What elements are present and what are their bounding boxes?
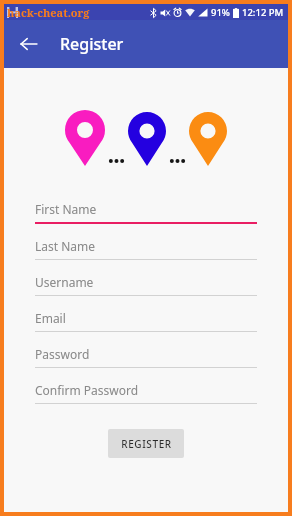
staticText: Last Name (35, 238, 96, 254)
button[interactable]: Confirm Password (35, 377, 257, 413)
staticText: REGISTER (121, 437, 172, 451)
staticText: Email (35, 310, 66, 326)
button[interactable]: Email (35, 305, 257, 341)
button[interactable]: Username (35, 269, 257, 305)
staticText: Confirm Password (35, 382, 139, 398)
staticText: Register (60, 33, 124, 55)
staticText: 12:12 PM (242, 6, 284, 19)
button[interactable]: Back (12, 27, 46, 61)
button[interactable]: Last Name (35, 233, 257, 269)
staticText: Username (35, 274, 94, 290)
staticText: First Name (35, 201, 97, 217)
staticText: hack-cheat.org (7, 5, 90, 20)
staticText: 91% (211, 6, 230, 19)
button[interactable]: First Name (35, 196, 257, 233)
staticText: Password (35, 346, 90, 362)
button[interactable]: Password (35, 341, 257, 377)
button[interactable]: REGISTER (108, 429, 184, 458)
